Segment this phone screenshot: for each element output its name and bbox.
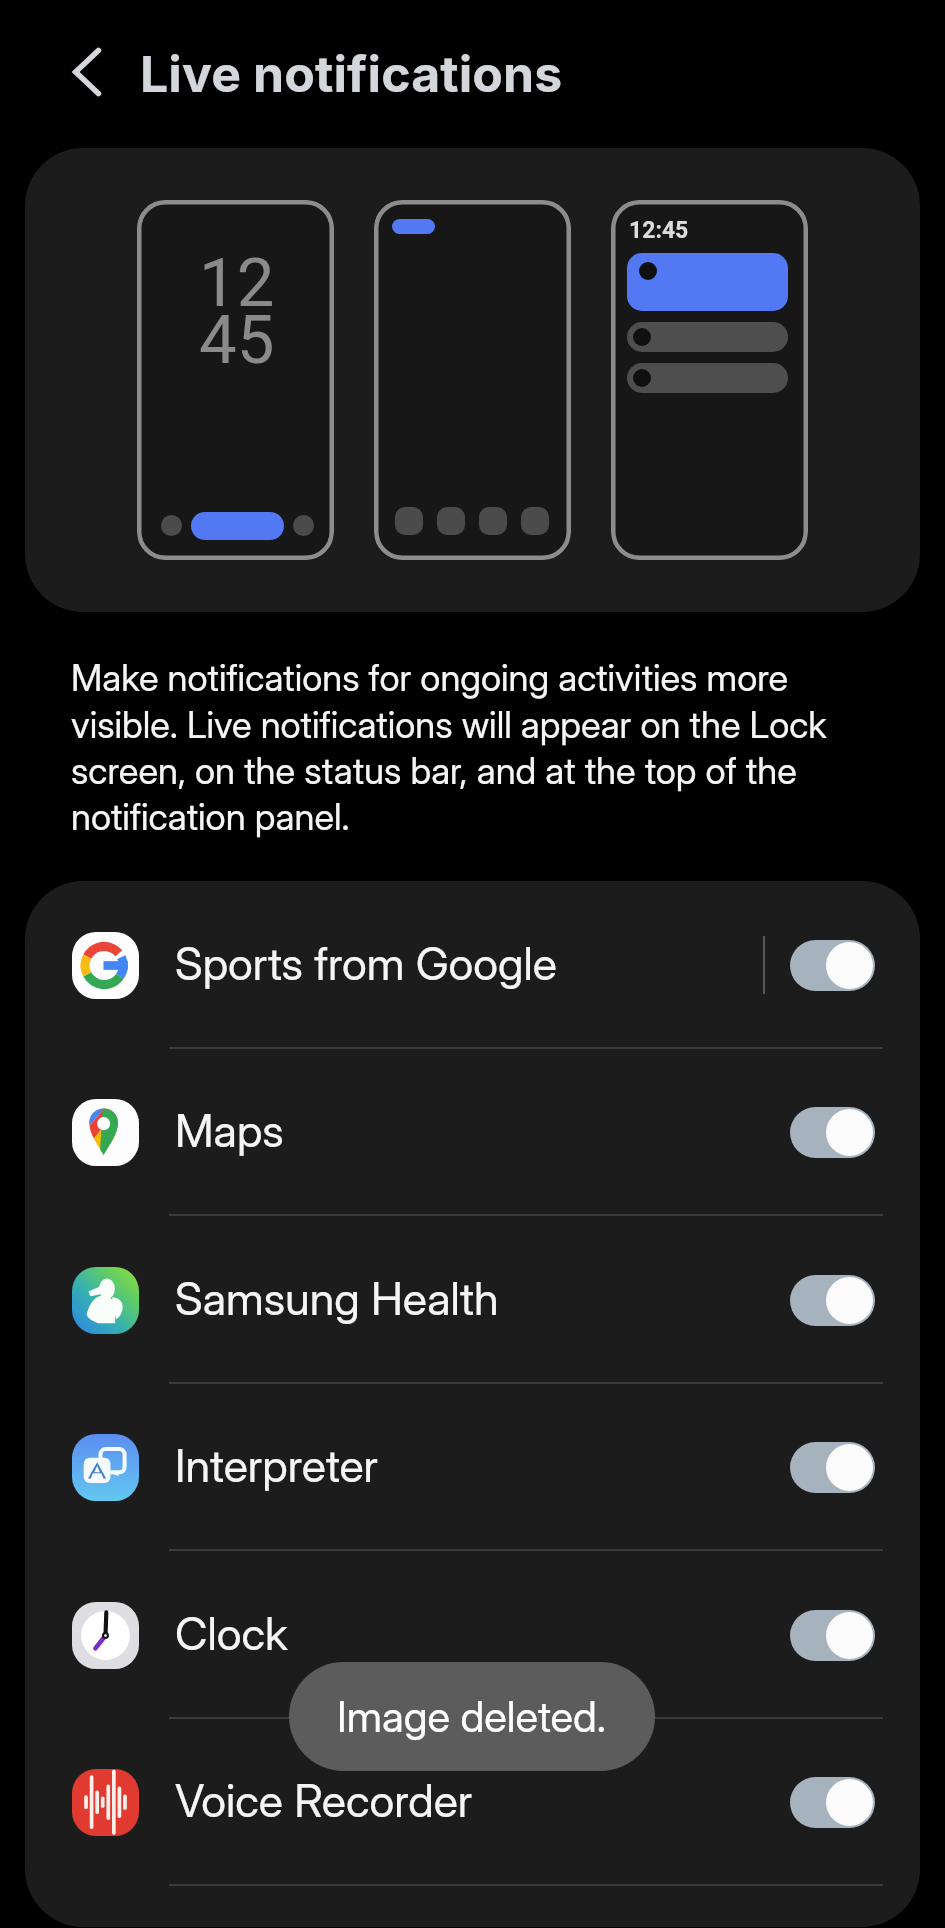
button[interactable]: Toggle on (790, 1777, 875, 1828)
staticText: Make notifications for ongoing activitie… (71, 656, 871, 839)
staticText: 12 45 (199, 244, 275, 379)
staticText: Live notifications (140, 44, 563, 104)
staticText: 12:45 (629, 217, 689, 244)
button[interactable]: Interpreter (25, 1383, 920, 1551)
button[interactable]: Toggle on (790, 940, 875, 991)
button[interactable]: Navigate up (45, 30, 129, 114)
staticText: Clock (175, 1606, 790, 1660)
button[interactable]: Maps (25, 1048, 920, 1216)
button[interactable]: Sports from Google (25, 881, 920, 1049)
staticText: Voice Recorder (175, 1773, 790, 1827)
staticText: Image deleted. (337, 1691, 607, 1742)
button[interactable]: Voice Recorder (25, 1718, 920, 1886)
staticText: Maps (175, 1103, 790, 1157)
button[interactable]: Toggle on (790, 1610, 875, 1661)
button[interactable]: Samsung Health (25, 1216, 920, 1384)
button[interactable]: Toggle on (790, 1442, 875, 1493)
button[interactable]: Clock (25, 1551, 920, 1719)
staticText: Sports from Google (175, 936, 763, 990)
button[interactable]: Toggle on (790, 1275, 875, 1326)
staticText: Samsung Health (175, 1271, 790, 1325)
staticText: Interpreter (175, 1438, 790, 1492)
button[interactable]: Toggle on (790, 1107, 875, 1158)
